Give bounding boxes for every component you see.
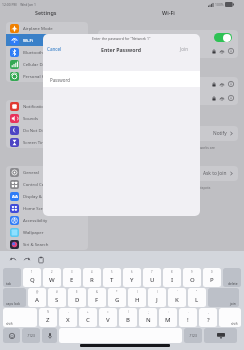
button[interactable]: delete xyxy=(223,268,241,287)
button[interactable]: Siri & Search xyxy=(6,238,88,250)
button[interactable]: 1 xyxy=(23,268,41,287)
button[interactable]: Bluetooth xyxy=(6,46,88,58)
staticText: 0 xyxy=(211,270,213,274)
button[interactable]: Personal Hotspot xyxy=(6,70,88,82)
button[interactable]: ' xyxy=(168,288,186,307)
button[interactable]: Wi-Fi xyxy=(6,34,88,46)
staticText: ) xyxy=(157,290,158,294)
staticText: Wi-Fi xyxy=(162,9,175,16)
button[interactable]: AA xyxy=(6,190,88,202)
staticText: ? xyxy=(207,316,210,324)
button[interactable]: tab xyxy=(3,268,21,287)
button[interactable]: ) xyxy=(148,288,166,307)
button[interactable]: Notifications xyxy=(6,100,88,112)
button[interactable]: Network 3 xyxy=(98,91,238,105)
button[interactable]: 7 xyxy=(143,268,161,287)
staticText: Control Center xyxy=(23,181,53,187)
staticText: Cellular Data xyxy=(23,61,49,67)
staticText: tab xyxy=(6,281,12,285)
button[interactable]: Control Center xyxy=(6,178,88,190)
button[interactable]: = xyxy=(99,308,117,327)
button[interactable]: - xyxy=(59,308,77,327)
staticText: Siri & Search xyxy=(23,241,49,247)
button[interactable]: @ xyxy=(28,288,46,307)
button[interactable]: 6 xyxy=(123,268,141,287)
button[interactable]: Paste xyxy=(36,255,45,264)
button[interactable]: Network 2 xyxy=(98,77,238,91)
button[interactable]: join xyxy=(208,288,239,307)
staticText: 2 xyxy=(51,270,53,274)
button[interactable]: Do Not Disturb xyxy=(6,124,88,136)
staticText: ; xyxy=(148,310,149,314)
button[interactable]: # xyxy=(48,288,66,307)
button[interactable]: Dictate xyxy=(42,328,57,343)
button[interactable]: * xyxy=(108,288,126,307)
button[interactable]: caps lock xyxy=(3,288,26,307)
staticText: U xyxy=(150,276,155,284)
button[interactable]: 4 xyxy=(83,268,101,287)
button[interactable]: shift xyxy=(3,308,37,327)
staticText: General xyxy=(23,169,39,175)
button[interactable]: Sounds xyxy=(6,112,88,124)
button[interactable]: : xyxy=(159,308,177,327)
button[interactable]: Accessibility xyxy=(6,214,88,226)
button[interactable]: " xyxy=(188,288,206,307)
button[interactable]: Join xyxy=(180,46,189,52)
staticText: @ xyxy=(36,290,39,294)
button[interactable]: Cancel xyxy=(47,46,62,52)
button[interactable]: Emoji xyxy=(3,328,20,343)
staticText: Z xyxy=(46,316,50,324)
staticText: Enter the password for "Network 1" xyxy=(92,36,151,41)
staticText: G xyxy=(115,296,120,304)
button[interactable]: Undo xyxy=(8,255,17,264)
button[interactable]: , xyxy=(199,308,217,327)
staticText: AA xyxy=(12,194,18,200)
button[interactable]: Airplane Mode xyxy=(6,22,88,34)
staticText: Y xyxy=(130,276,134,284)
button[interactable]: Hide keyboard xyxy=(204,328,237,343)
button[interactable]: % xyxy=(39,308,57,327)
button[interactable]: Auto-Join Hotspot xyxy=(98,166,238,181)
button[interactable]: 8 xyxy=(163,268,181,287)
button[interactable]: . xyxy=(179,308,197,327)
staticText: Join xyxy=(180,46,189,52)
staticText: " xyxy=(196,290,198,294)
button[interactable]: Screen Time xyxy=(6,136,88,148)
staticText: Personal Hotspot xyxy=(23,73,58,79)
button[interactable]: Redo xyxy=(22,255,31,264)
button[interactable]: 2 xyxy=(43,268,61,287)
button[interactable]: 0 xyxy=(203,268,221,287)
staticText: Wi-Fi xyxy=(23,37,33,43)
button[interactable]: ( xyxy=(128,288,146,307)
staticText: J xyxy=(156,296,158,304)
staticText: join xyxy=(230,301,236,305)
button[interactable]: & xyxy=(88,288,106,307)
button[interactable]: shift xyxy=(219,308,241,327)
button[interactable]: Wi-Fi xyxy=(98,30,238,44)
button[interactable]: Network 1 xyxy=(98,44,238,58)
button[interactable]: $ xyxy=(68,288,86,307)
staticText: .?123 xyxy=(27,334,35,338)
button[interactable]: Wallpaper xyxy=(6,226,88,238)
button[interactable]: Ask to Join Networks xyxy=(98,126,238,141)
staticText: M xyxy=(165,316,171,324)
button[interactable]: / xyxy=(119,308,137,327)
button[interactable]: 9 xyxy=(183,268,201,287)
button[interactable]: General xyxy=(6,166,88,178)
button[interactable]: .?123 xyxy=(22,328,40,343)
button[interactable]: 3 xyxy=(63,268,81,287)
staticText: Home Screen xyxy=(23,205,50,211)
button[interactable]: 5 xyxy=(103,268,121,287)
button[interactable]: Cellular Data xyxy=(6,58,88,70)
staticText: % xyxy=(47,310,50,314)
button[interactable]: Home Screen xyxy=(6,202,88,214)
staticText: I xyxy=(171,276,174,284)
button[interactable]: + xyxy=(79,308,97,327)
staticText: Wi-Fi xyxy=(103,35,113,41)
staticText: Airplane Mode xyxy=(23,25,53,31)
button[interactable]: .?123 xyxy=(184,328,202,343)
button[interactable]: ; xyxy=(139,308,157,327)
